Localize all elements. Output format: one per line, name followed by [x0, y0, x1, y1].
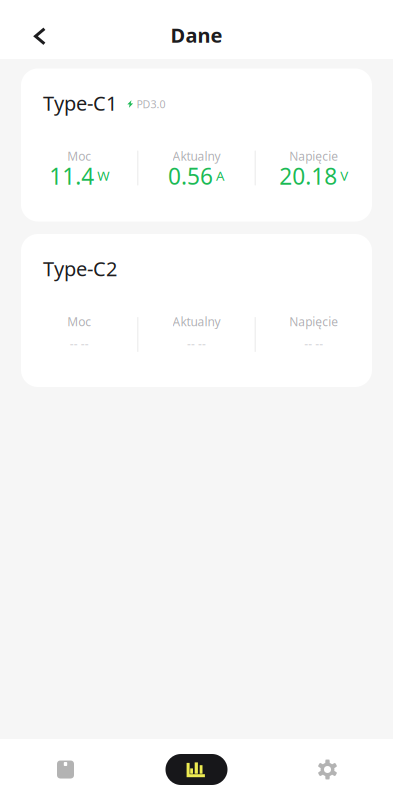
staticText: Aktualny: [172, 313, 220, 329]
staticText: Type-C1: [43, 90, 117, 116]
staticText: Moc: [67, 148, 91, 164]
staticText: PD3.0: [136, 97, 165, 111]
staticText: A: [216, 167, 225, 184]
button[interactable]: Settings: [262, 743, 393, 795]
button[interactable]: Devices: [0, 743, 131, 795]
button[interactable]: Back: [18, 14, 62, 58]
staticText: 20.18: [279, 161, 337, 191]
staticText: -- --: [70, 335, 89, 351]
staticText: Aktualny: [172, 148, 220, 164]
staticText: -- --: [304, 335, 323, 351]
staticText: 0.56: [168, 161, 213, 191]
button[interactable]: Data: [131, 743, 262, 795]
staticText: -- --: [187, 335, 206, 351]
staticText: V: [340, 167, 348, 184]
staticText: 11.4: [49, 161, 94, 191]
staticText: W: [97, 167, 109, 184]
staticText: Moc: [67, 313, 91, 329]
staticText: Napięcie: [289, 148, 338, 164]
staticText: Dane: [170, 22, 222, 48]
staticText: Napięcie: [289, 313, 338, 329]
staticText: Type-C2: [43, 255, 117, 282]
